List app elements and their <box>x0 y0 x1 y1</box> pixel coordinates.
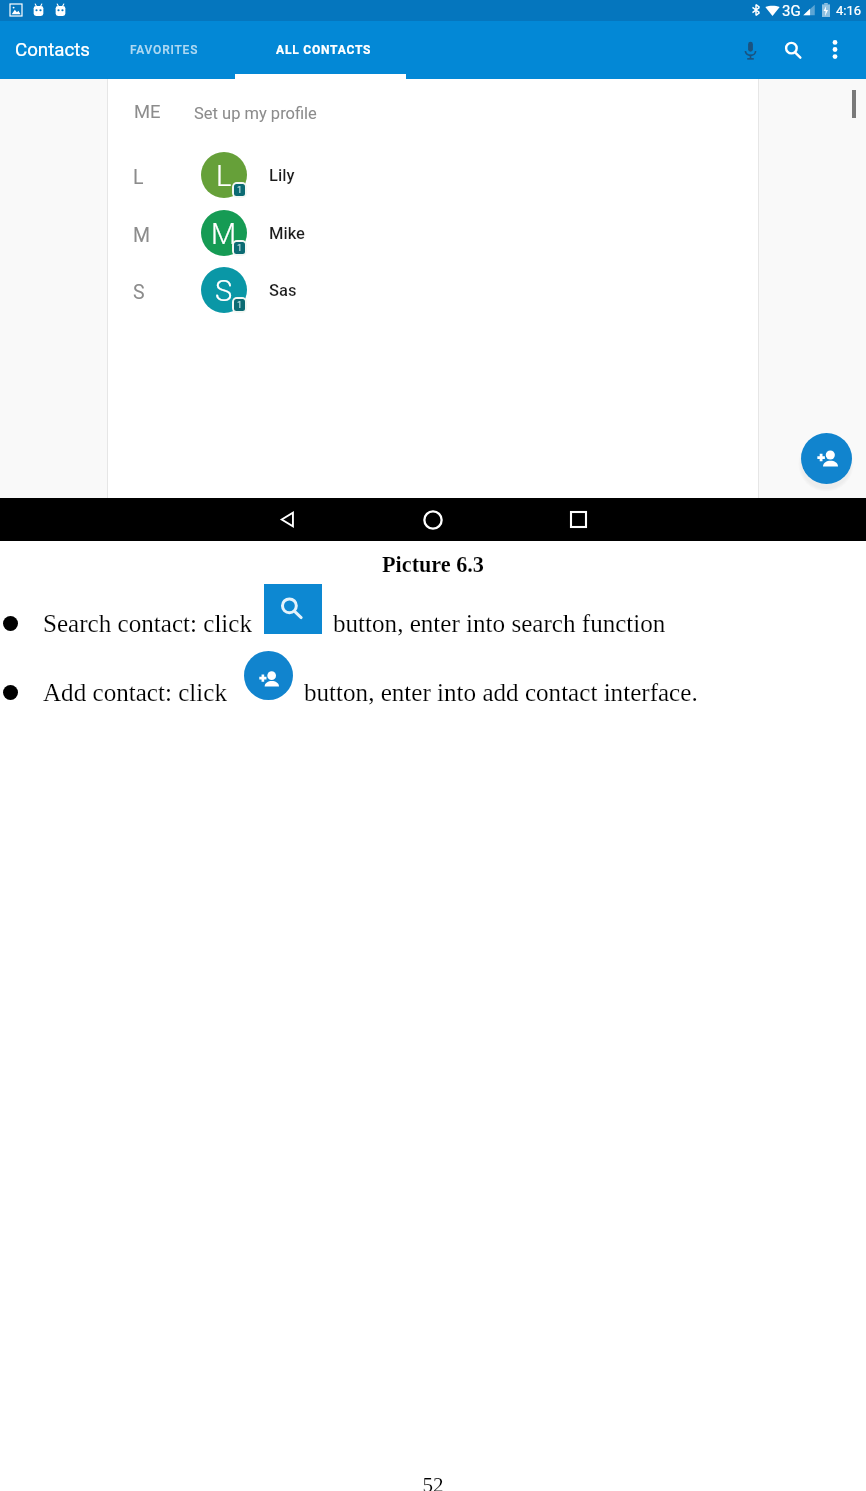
button[interactable]: ALL CONTACTS <box>238 22 409 78</box>
button[interactable]: Add contact <box>244 651 293 700</box>
staticText: L <box>216 159 232 193</box>
button[interactable]: Search <box>264 584 322 634</box>
staticText: FAVORITES <box>130 43 199 57</box>
staticText: 52 <box>0 1473 866 1491</box>
staticText: 4:16 <box>836 3 862 18</box>
staticText: ALL CONTACTS <box>276 43 372 57</box>
button[interactable]: Search <box>771 27 815 71</box>
button[interactable]: Recents <box>557 498 600 541</box>
staticText: Picture 6.3 <box>0 552 866 577</box>
button[interactable]: FAVORITES <box>100 22 228 78</box>
button[interactable]: S <box>107 267 758 313</box>
staticText: Sas <box>269 281 297 300</box>
button[interactable]: ME <box>107 96 758 136</box>
staticText: 1 <box>237 185 243 196</box>
staticText: M <box>211 217 237 251</box>
staticText: 1 <box>237 300 243 311</box>
staticText: 1 <box>237 243 243 254</box>
staticText: S <box>133 281 145 304</box>
staticText: L <box>133 166 144 189</box>
staticText: Mike <box>269 224 305 243</box>
staticText: button, enter into add contact interface… <box>304 679 698 707</box>
button[interactable]: L <box>107 152 758 198</box>
button[interactable]: Back <box>266 498 309 541</box>
staticText: M <box>133 224 151 247</box>
staticText: Set up my profile <box>194 104 317 123</box>
button[interactable]: Voice search <box>728 28 772 72</box>
staticText: 3G <box>782 2 801 20</box>
staticText: Add contact: click <box>43 679 227 707</box>
button[interactable]: Add contact <box>801 433 852 484</box>
staticText: Search contact: click <box>43 610 253 638</box>
button[interactable]: More options <box>813 27 857 71</box>
staticText: Contacts <box>15 39 90 61</box>
staticText: Lily <box>269 166 295 185</box>
staticText: ME <box>134 101 161 123</box>
staticText: button, enter into search function <box>333 610 666 638</box>
button[interactable]: Home <box>411 498 454 541</box>
staticText: S <box>215 274 233 308</box>
button[interactable]: M <box>107 210 758 256</box>
